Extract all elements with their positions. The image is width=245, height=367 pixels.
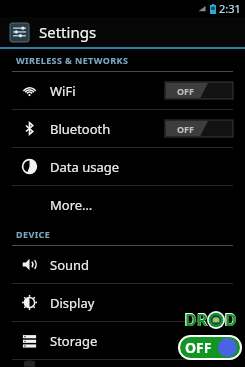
staticText: Display: [50, 294, 95, 312]
button[interactable]: [0, 360, 245, 367]
staticText: WIRELESS & NETWORKS: [16, 54, 129, 66]
staticText: DR: [184, 308, 208, 331]
button[interactable]: WiFi: [0, 72, 245, 109]
staticText: Storage: [50, 332, 98, 350]
staticText: OFF: [177, 123, 195, 135]
staticText: Data usage: [50, 158, 120, 176]
button[interactable]: Bluetooth: [0, 110, 245, 147]
button[interactable]: Storage: [0, 322, 245, 359]
staticText: DR: [185, 309, 208, 331]
staticText: Settings: [39, 22, 97, 42]
staticText: DEVICE: [16, 228, 51, 240]
staticText: Sound: [50, 256, 90, 274]
staticText: WiFi: [50, 82, 76, 100]
button[interactable]: Toggle off: [165, 82, 233, 99]
staticText: 2:31: [219, 1, 241, 16]
staticText: OFF: [177, 85, 195, 97]
button[interactable]: Display: [0, 284, 245, 321]
button[interactable]: Toggle off: [165, 120, 233, 137]
staticText: Bluetooth: [50, 120, 111, 138]
button[interactable]: More…: [0, 186, 245, 223]
button[interactable]: Sound: [0, 246, 245, 283]
staticText: OFF: [185, 338, 212, 357]
button[interactable]: Data usage: [0, 148, 245, 185]
staticText: D: [224, 308, 237, 331]
staticText: D: [225, 309, 237, 331]
staticText: More…: [50, 196, 93, 214]
